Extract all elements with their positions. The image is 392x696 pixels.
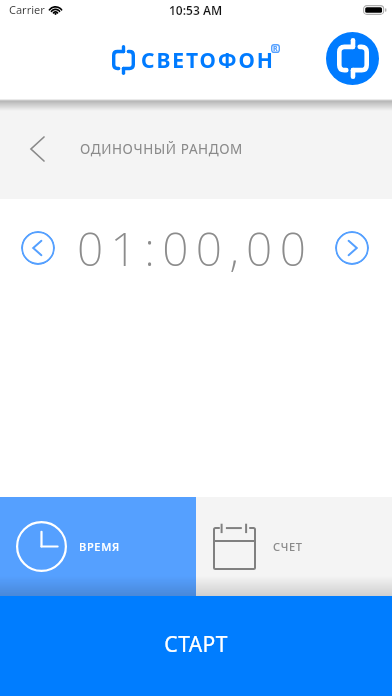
staticText: 01:00,00 (77, 217, 314, 280)
button[interactable]: Увеличить (335, 231, 369, 265)
button[interactable]: Уменьшить (21, 231, 55, 265)
staticText: СВЕТОФОН (141, 46, 275, 75)
staticText: СЧЕТ (273, 539, 303, 554)
staticText: 10:53 AM (169, 2, 223, 18)
button[interactable]: СЧЕТ (196, 497, 392, 596)
button[interactable]: Профиль (326, 32, 379, 85)
button[interactable]: ВРЕМЯ (0, 497, 196, 596)
staticText: ВРЕМЯ (79, 539, 120, 554)
staticText: ОДИНОЧНЫЙ РАНДОМ (80, 140, 243, 158)
staticText: R (273, 44, 278, 53)
button[interactable]: ОДИНОЧНЫЙ РАНДОМ (0, 99, 392, 199)
button[interactable]: СТАРТ (0, 596, 392, 696)
staticText: СТАРТ (164, 630, 228, 659)
staticText: Carrier (9, 2, 45, 17)
